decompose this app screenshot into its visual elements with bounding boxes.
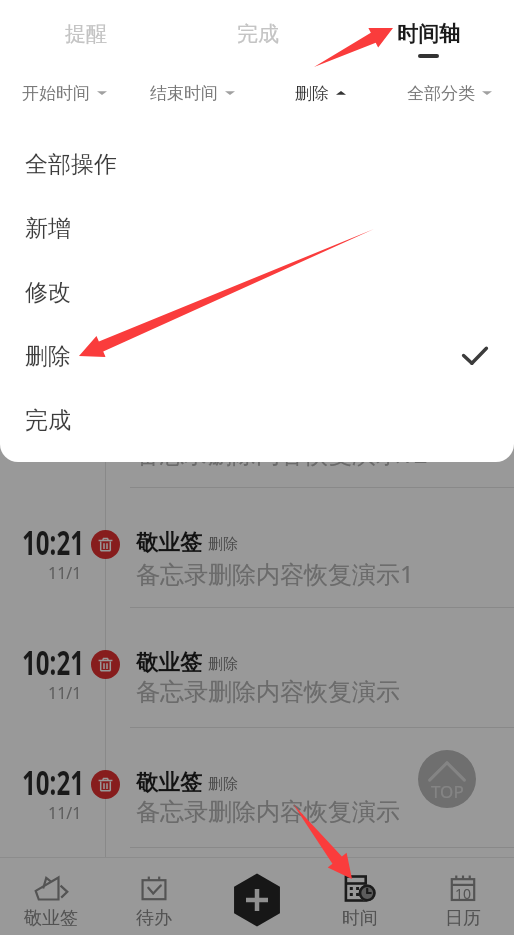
staticText: 日历 — [445, 907, 481, 930]
button[interactable]: 删除 — [0, 324, 514, 388]
staticText: 11/1 — [48, 802, 82, 824]
staticText: 10:21 — [22, 639, 84, 685]
button[interactable]: 删除 — [256, 66, 385, 120]
staticText: 11/1 — [48, 562, 82, 584]
staticText: 11/1 — [48, 442, 82, 464]
staticText: 敬业签 — [136, 649, 202, 677]
staticText: 10:21 — [22, 759, 84, 805]
staticText: 时间 — [342, 907, 378, 930]
button[interactable]: 敬业签 — [0, 857, 102, 935]
button[interactable]: 时间轴 — [343, 0, 514, 66]
button[interactable]: 10:21 — [0, 368, 514, 488]
staticText: 删除 — [208, 775, 238, 794]
staticText: 全部分类 — [407, 83, 475, 104]
button[interactable]: 10 — [411, 857, 514, 935]
staticText: 10 — [455, 884, 472, 903]
staticText: 删除 — [208, 535, 238, 554]
button[interactable]: 完成 — [0, 388, 514, 452]
button[interactable]: 结束时间 — [128, 66, 256, 120]
button[interactable]: 待办 — [102, 857, 205, 935]
staticText: 敬业签 — [136, 529, 202, 557]
staticText: TOP — [431, 780, 464, 803]
staticText: 待办 — [136, 907, 172, 930]
staticText: 完成 — [237, 21, 279, 47]
button[interactable]: 时间 — [308, 857, 411, 935]
button[interactable]: 10:21 — [0, 608, 514, 728]
staticText: 敬业签 — [136, 769, 202, 797]
button[interactable]: 开始时间 — [0, 66, 128, 120]
button[interactable]: Scroll to top — [418, 750, 476, 808]
staticText: 修改 — [25, 278, 71, 307]
staticText: 10:21 — [22, 399, 84, 445]
staticText: 全部操作 — [25, 150, 117, 179]
staticText: 时间轴 — [397, 21, 460, 47]
button[interactable]: 新增 — [0, 196, 514, 260]
staticText: 删除 — [25, 342, 71, 371]
staticText: 备忘录删除内容恢复演示1 — [136, 557, 414, 590]
staticText: 删除 — [208, 655, 238, 674]
staticText: 新增 — [25, 214, 71, 243]
button[interactable]: Add new note — [226, 869, 288, 931]
staticText: 开始时间 — [22, 83, 90, 104]
button[interactable]: 提醒 — [0, 0, 172, 66]
button[interactable]: 全部分类 — [385, 66, 514, 120]
staticText: 结束时间 — [150, 83, 218, 104]
staticText: 删除 — [295, 83, 329, 104]
staticText: 敬业签 — [24, 907, 78, 930]
button[interactable]: 修改 — [0, 260, 514, 324]
staticText: 备忘录删除内容恢复演示 — [136, 797, 400, 827]
staticText: 备忘录删除内容恢复演示12 — [136, 437, 428, 470]
button[interactable]: 全部操作 — [0, 132, 514, 196]
button[interactable]: 完成 — [172, 0, 343, 66]
staticText: 11/1 — [48, 682, 82, 704]
staticText: 提醒 — [65, 21, 107, 47]
staticText: 10:21 — [22, 519, 84, 565]
button[interactable]: 10:21 — [0, 728, 514, 848]
staticText: 完成 — [25, 406, 71, 435]
staticText: 备忘录删除内容恢复演示 — [136, 677, 400, 707]
button[interactable]: 10:21 — [0, 488, 514, 608]
